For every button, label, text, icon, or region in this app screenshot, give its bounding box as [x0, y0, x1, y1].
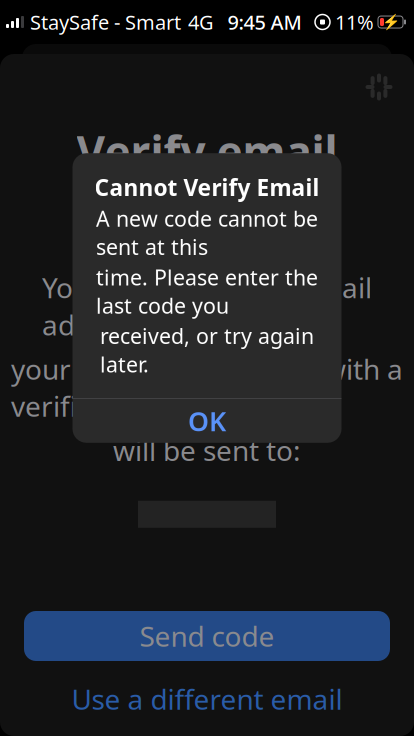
- button[interactable]: Send code: [24, 611, 390, 661]
- staticText: 11%: [335, 9, 374, 35]
- staticText: time. Please enter the last code you: [96, 263, 318, 320]
- staticText: Send code: [139, 617, 274, 655]
- staticText: received, or try again later.: [100, 322, 314, 378]
- button[interactable]: Use a different email: [24, 684, 390, 714]
- staticText: OK: [188, 403, 226, 438]
- staticText: Verify email address: [76, 122, 337, 239]
- staticText: ⚡: [381, 14, 399, 30]
- staticText: your Apple ID. An email with a verificat…: [11, 350, 403, 425]
- staticText: A new code cannot be sent at this: [96, 204, 318, 261]
- staticText: 9:45 AM: [227, 9, 301, 35]
- button[interactable]: OK: [72, 399, 341, 443]
- staticText: Cannot Verify Email: [94, 172, 319, 202]
- staticText: You must verify the email address you us…: [42, 269, 372, 343]
- staticText: Use a different email: [71, 680, 342, 718]
- staticText: will be sent to:: [113, 432, 301, 469]
- staticText: 4G: [188, 9, 214, 35]
- staticText: StaySafe - Smart: [30, 9, 181, 35]
